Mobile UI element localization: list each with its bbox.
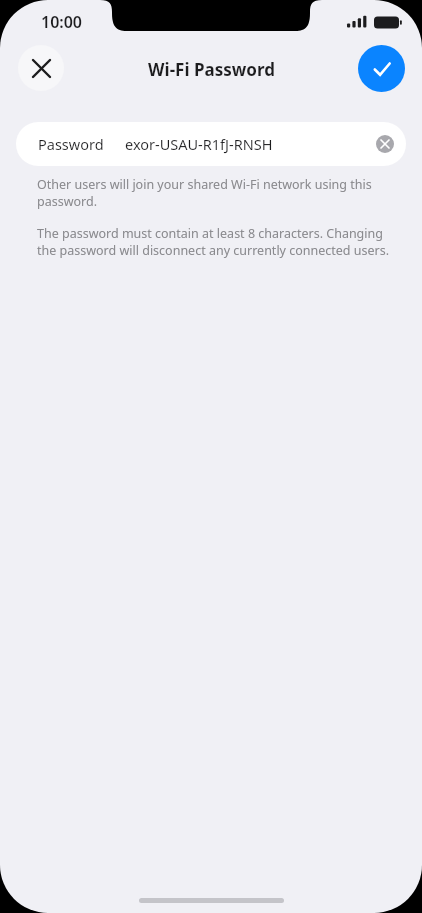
staticText: exor-USAU-R1fJ-RNSH (125, 134, 273, 154)
button[interactable]: Clear text (376, 135, 394, 153)
staticText: Other users will join your shared Wi-Fi … (37, 176, 394, 209)
staticText: The password must contain at least 8 cha… (37, 225, 394, 258)
button[interactable]: Close (18, 45, 64, 91)
button[interactable]: Password (16, 122, 406, 166)
staticText: Wi-Fi Password (148, 58, 275, 81)
staticText: Password (38, 134, 104, 154)
staticText: 10:00 (41, 11, 83, 33)
button[interactable]: Confirm (358, 45, 405, 92)
